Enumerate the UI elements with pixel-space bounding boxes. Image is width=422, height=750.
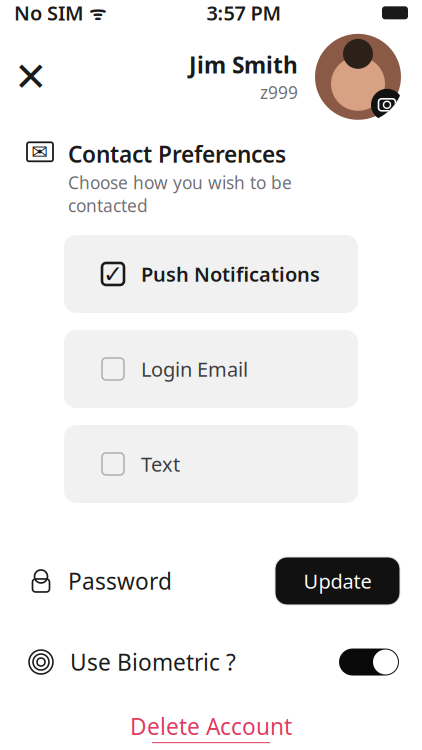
- staticText: ✉: [31, 140, 48, 163]
- button[interactable]: Close: [8, 54, 54, 100]
- staticText: Contact Preferences: [68, 139, 286, 169]
- staticText: ᯤ: [84, 0, 106, 25]
- staticText: Login Email: [141, 356, 248, 382]
- staticText: Choose how you wish to be contacted: [68, 171, 292, 217]
- staticText: ✓: [103, 260, 123, 287]
- button[interactable]: Login Email: [64, 330, 358, 408]
- staticText: 3:57 PM: [206, 0, 281, 26]
- button[interactable]: ✓: [64, 235, 358, 313]
- staticText: Delete Account: [130, 711, 292, 741]
- staticText: Update: [303, 568, 371, 594]
- button[interactable]: Update: [275, 557, 400, 605]
- staticText: z999: [260, 81, 298, 104]
- staticText: ✕: [14, 54, 48, 99]
- staticText: No SIM: [14, 0, 84, 26]
- staticText: Use Biometric ?: [70, 647, 236, 677]
- staticText: Jim Smith: [189, 50, 298, 80]
- staticText: Push Notifications: [141, 261, 320, 287]
- button[interactable]: Delete Account: [0, 711, 422, 743]
- staticText: Password: [68, 566, 172, 596]
- button[interactable]: Use Biometric: [338, 647, 400, 677]
- button[interactable]: Change profile photo: [312, 31, 404, 123]
- staticText: Text: [141, 451, 180, 477]
- button[interactable]: Text: [64, 425, 358, 503]
